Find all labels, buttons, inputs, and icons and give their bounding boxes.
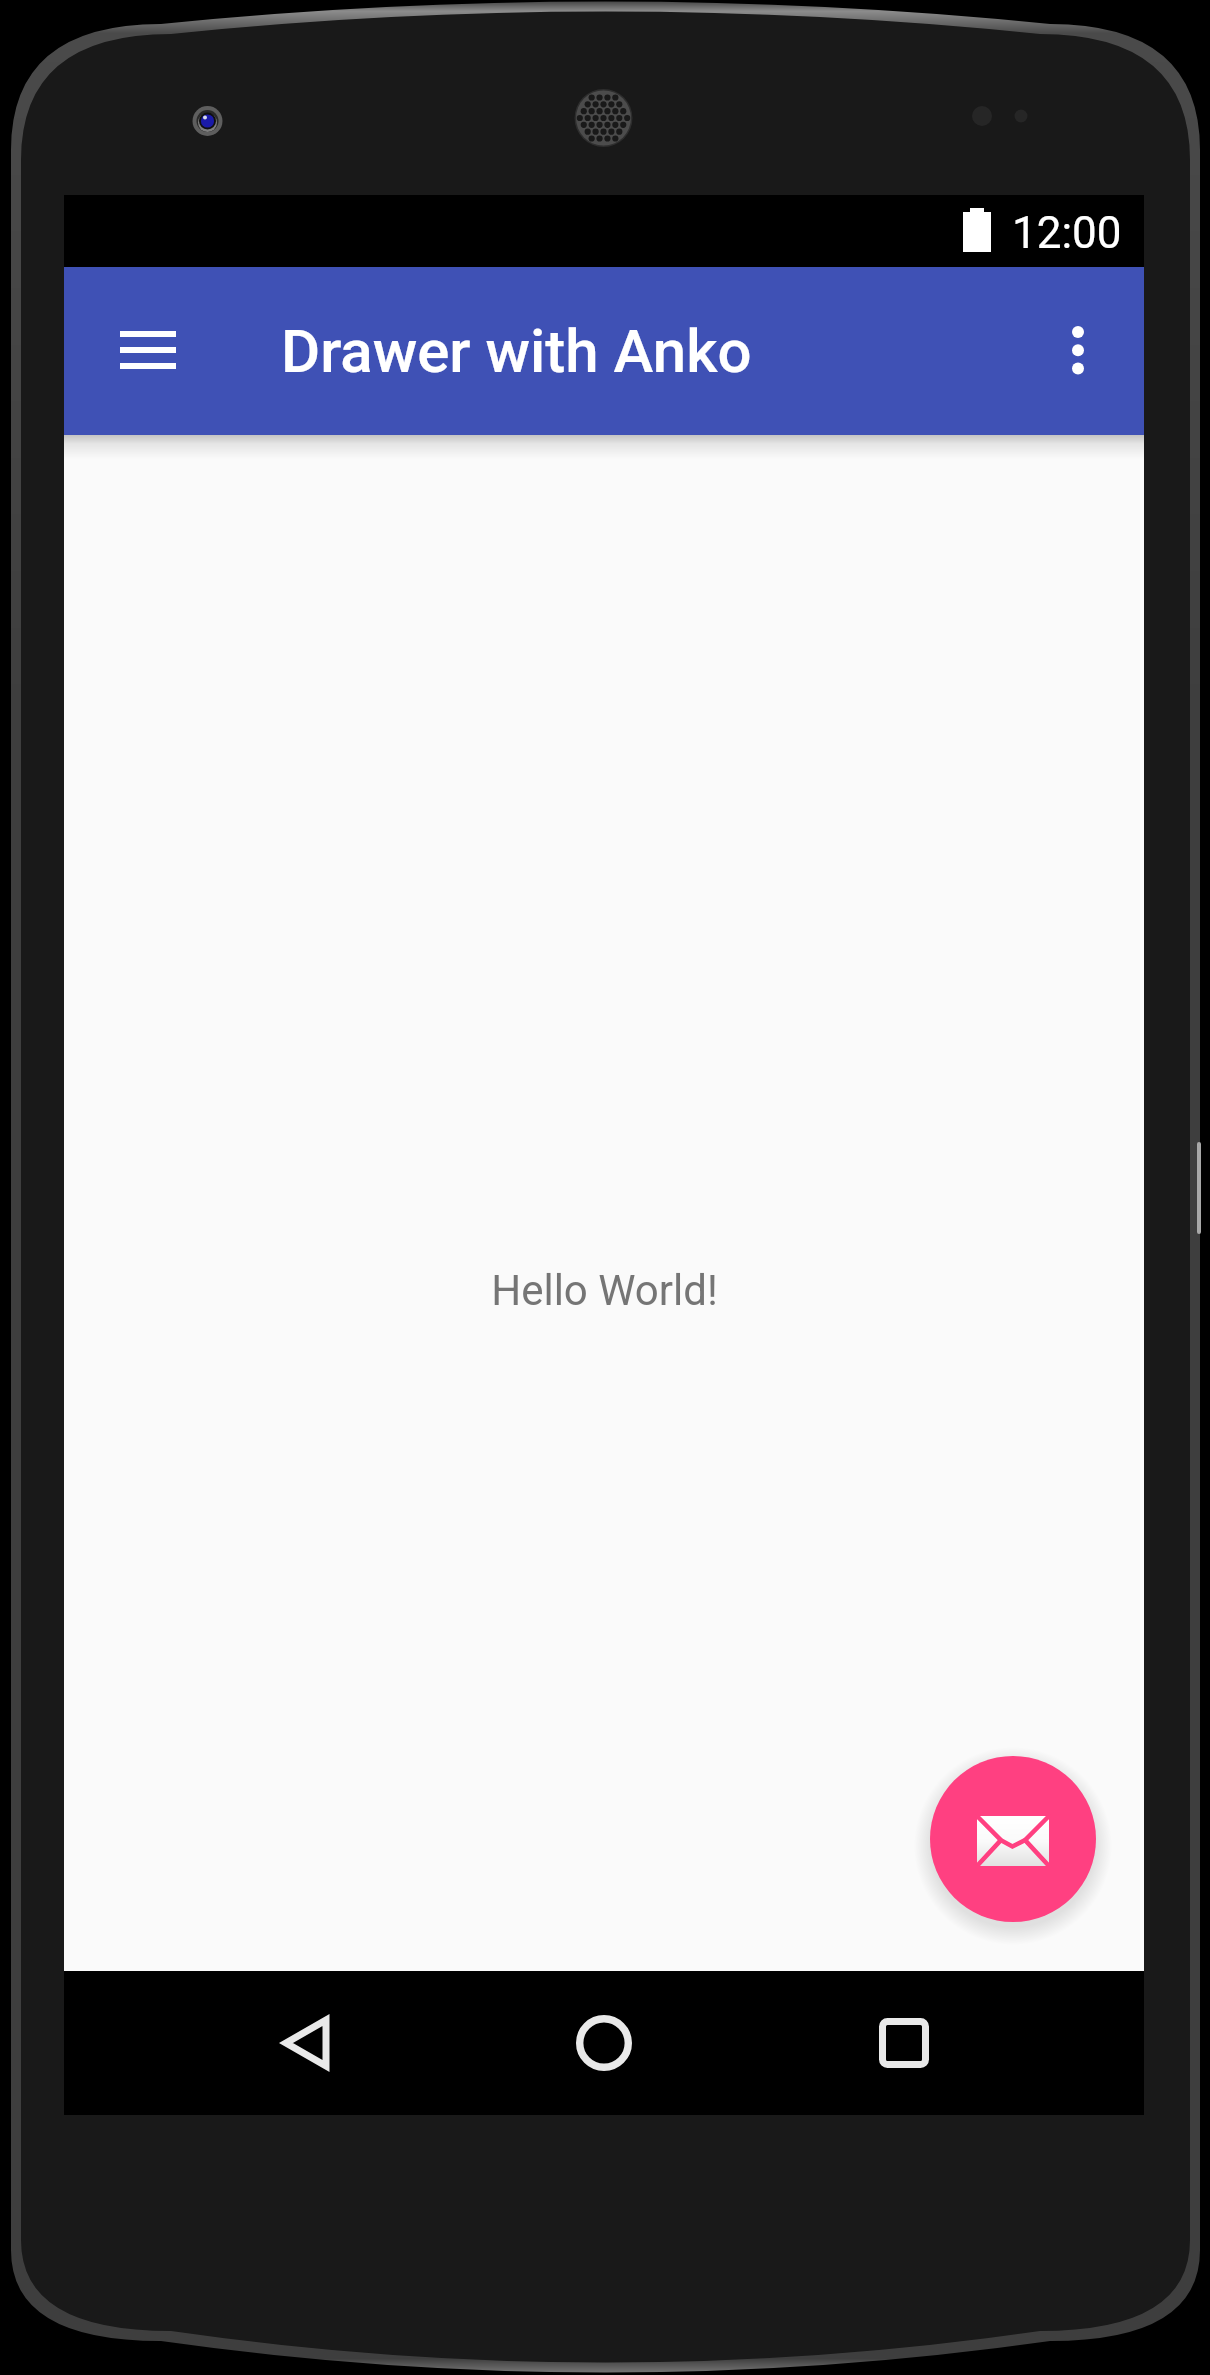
button[interactable]: Back [234, 1971, 378, 2115]
button[interactable]: Recent apps [832, 1971, 976, 2115]
staticText: 12:00 [1012, 207, 1122, 259]
button[interactable]: More options [1006, 279, 1150, 423]
staticText: Drawer with Anko [281, 316, 752, 386]
button[interactable]: Open navigation drawer [76, 279, 220, 423]
button[interactable]: Home [532, 1971, 676, 2115]
button[interactable]: Compose email [930, 1756, 1096, 1922]
staticText: Hello World! [491, 1266, 718, 1315]
